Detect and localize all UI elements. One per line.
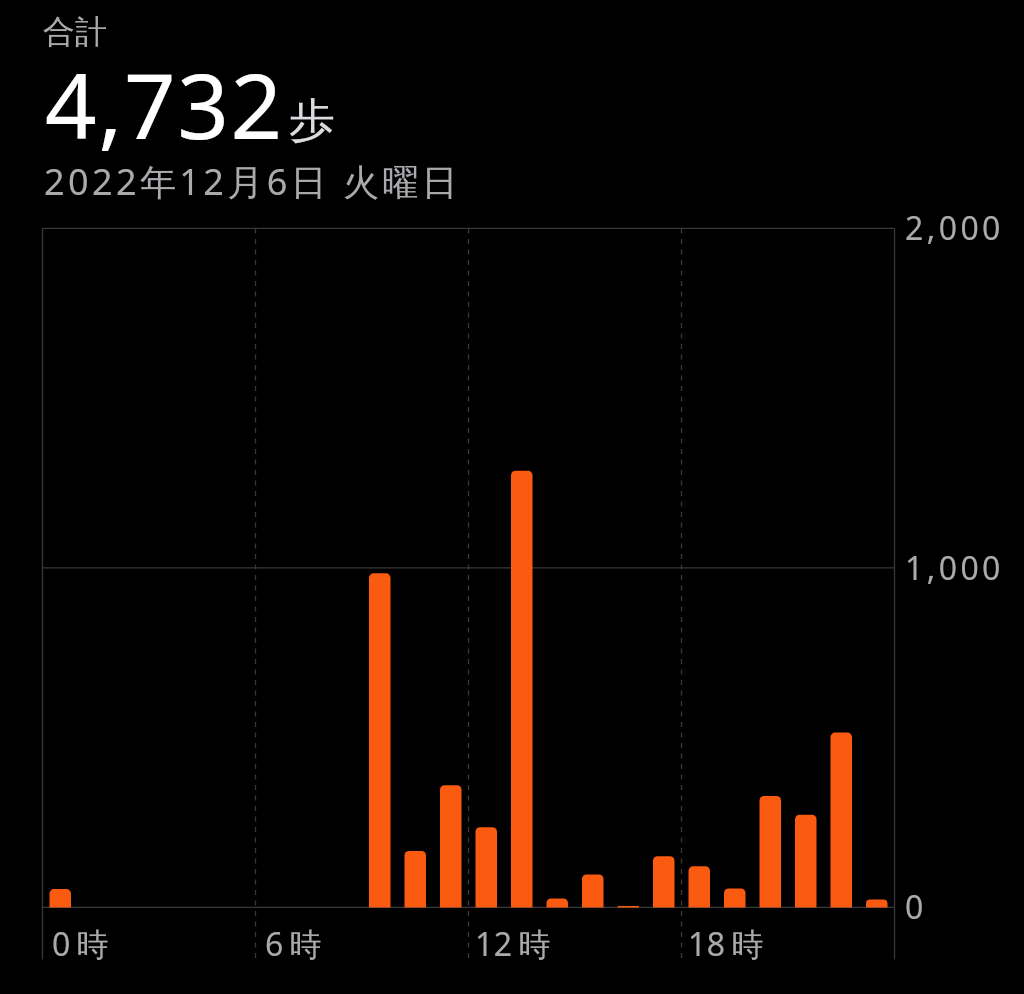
staticText: 6 時 xyxy=(265,922,323,966)
staticText: 4,732 xyxy=(45,42,284,165)
staticText: 0 xyxy=(905,885,927,929)
staticText: 2,000 xyxy=(905,206,1004,250)
staticText: 合計 xyxy=(43,12,107,52)
staticText: 12 時 xyxy=(475,922,551,966)
staticText: 1,000 xyxy=(905,546,1004,590)
staticText: 2022年12月6日 火曜日 xyxy=(44,157,462,206)
staticText: 18 時 xyxy=(688,922,764,966)
button[interactable]: 1日の歩数グラフ xyxy=(0,215,1024,994)
staticText: 0 時 xyxy=(52,922,110,966)
button[interactable]: 合計 xyxy=(0,0,1024,215)
staticText: 歩 xyxy=(289,92,335,150)
